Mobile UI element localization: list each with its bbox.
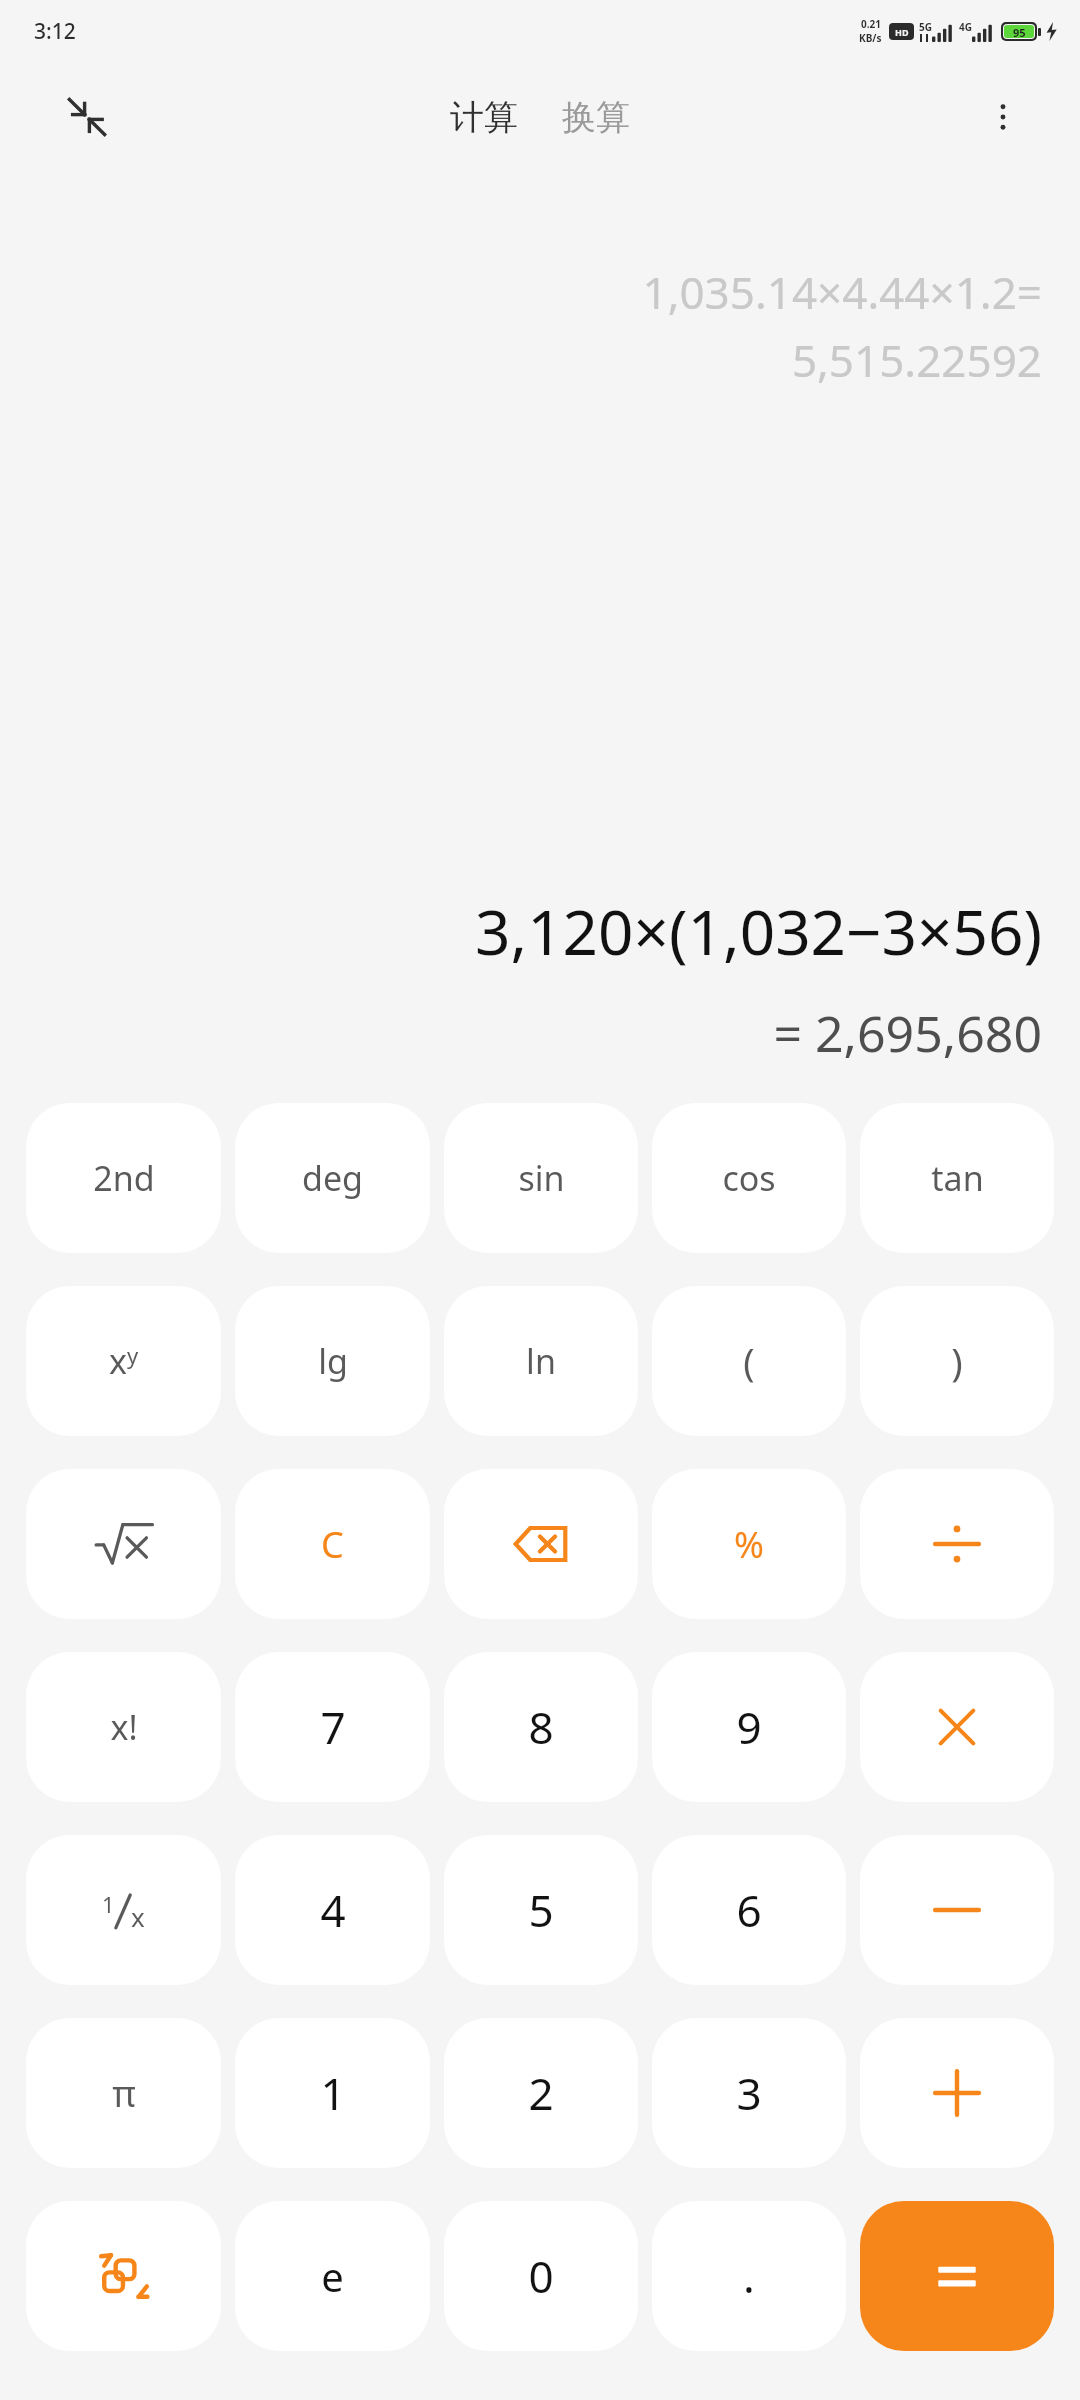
button[interactable]: deg	[235, 1103, 430, 1253]
button[interactable]: 7	[235, 1652, 430, 1802]
staticText: (	[743, 1335, 755, 1387]
staticText: ln	[526, 1338, 556, 1384]
staticText: 6	[736, 1880, 762, 1940]
button[interactable]: 8	[444, 1652, 638, 1802]
button[interactable]: Minus	[860, 1835, 1054, 1985]
button[interactable]: cos	[652, 1103, 846, 1253]
button[interactable]: 计算	[442, 86, 526, 149]
staticText: KB/s	[859, 31, 882, 45]
staticText: %	[734, 1520, 764, 1569]
button[interactable]: Plus	[860, 2018, 1054, 2168]
staticText: 2nd	[93, 1155, 155, 1201]
button[interactable]: 2	[444, 2018, 638, 2168]
staticText: sin	[518, 1155, 565, 1201]
staticText: 95	[1013, 25, 1026, 38]
staticText: π	[112, 2069, 136, 2118]
button[interactable]: Reciprocal	[26, 1835, 221, 1985]
staticText: HD	[895, 26, 909, 38]
button[interactable]: .	[652, 2201, 846, 2351]
staticText: 1	[320, 2063, 346, 2123]
button[interactable]: Unit convert	[26, 2201, 221, 2351]
staticText: 7	[320, 1697, 346, 1757]
button[interactable]: )	[860, 1286, 1054, 1436]
button[interactable]: 2nd	[26, 1103, 221, 1253]
staticText: 4G	[959, 20, 972, 34]
button[interactable]: 3	[652, 2018, 846, 2168]
button[interactable]: sin	[444, 1103, 638, 1253]
button[interactable]: 4	[235, 1835, 430, 1985]
button[interactable]: More options	[972, 86, 1034, 148]
button[interactable]: 9	[652, 1652, 846, 1802]
button[interactable]: Square root	[26, 1469, 221, 1619]
staticText: 5,515.22592	[791, 330, 1042, 390]
staticText: 换算	[562, 96, 630, 139]
button[interactable]: x!	[26, 1652, 221, 1802]
staticText: 3:12	[34, 17, 76, 46]
staticText: 计算	[450, 96, 518, 139]
staticText: 1,035.14×4.44×1.2=	[642, 262, 1042, 322]
staticText: 4	[320, 1880, 346, 1940]
button[interactable]: C	[235, 1469, 430, 1619]
button[interactable]: Power	[26, 1286, 221, 1436]
staticText: = 2,695,680	[773, 999, 1042, 1067]
button[interactable]: lg	[235, 1286, 430, 1436]
button[interactable]: Backspace	[444, 1469, 638, 1619]
staticText: x	[109, 1338, 127, 1384]
button[interactable]: 6	[652, 1835, 846, 1985]
staticText: y	[127, 1340, 139, 1370]
staticText: 3	[736, 2063, 762, 2123]
button[interactable]: 换算	[554, 86, 638, 149]
button[interactable]: 1	[235, 2018, 430, 2168]
staticText: 5	[528, 1880, 554, 1940]
staticText: lg	[318, 1338, 348, 1384]
staticText: 9	[736, 1697, 762, 1757]
button[interactable]: Divide	[860, 1469, 1054, 1619]
staticText: .	[743, 2246, 755, 2306]
staticText: )	[951, 1335, 963, 1387]
staticText: 8	[528, 1697, 554, 1757]
button[interactable]: ln	[444, 1286, 638, 1436]
staticText: x!	[110, 1704, 138, 1750]
staticText: deg	[302, 1155, 363, 1201]
button[interactable]: Multiply	[860, 1652, 1054, 1802]
staticText: e	[321, 2249, 344, 2303]
staticText: 1	[102, 1889, 115, 1919]
button[interactable]: e	[235, 2201, 430, 2351]
button[interactable]: tan	[860, 1103, 1054, 1253]
staticText: cos	[722, 1155, 776, 1201]
button[interactable]: %	[652, 1469, 846, 1619]
button[interactable]: π	[26, 2018, 221, 2168]
button[interactable]: 0	[444, 2201, 638, 2351]
staticText: tan	[931, 1155, 984, 1201]
button[interactable]: Collapse	[56, 86, 118, 148]
staticText: x	[131, 1899, 145, 1934]
staticText: 3,120×(1,032−3×56)	[475, 889, 1042, 973]
staticText: 0.21	[861, 17, 881, 31]
button[interactable]: 5	[444, 1835, 638, 1985]
staticText: 0	[528, 2246, 554, 2306]
button[interactable]: (	[652, 1286, 846, 1436]
staticText: 2	[528, 2063, 554, 2123]
staticText: 5G	[919, 20, 932, 34]
button[interactable]: Equals	[860, 2201, 1054, 2351]
staticText: C	[321, 1520, 344, 1569]
